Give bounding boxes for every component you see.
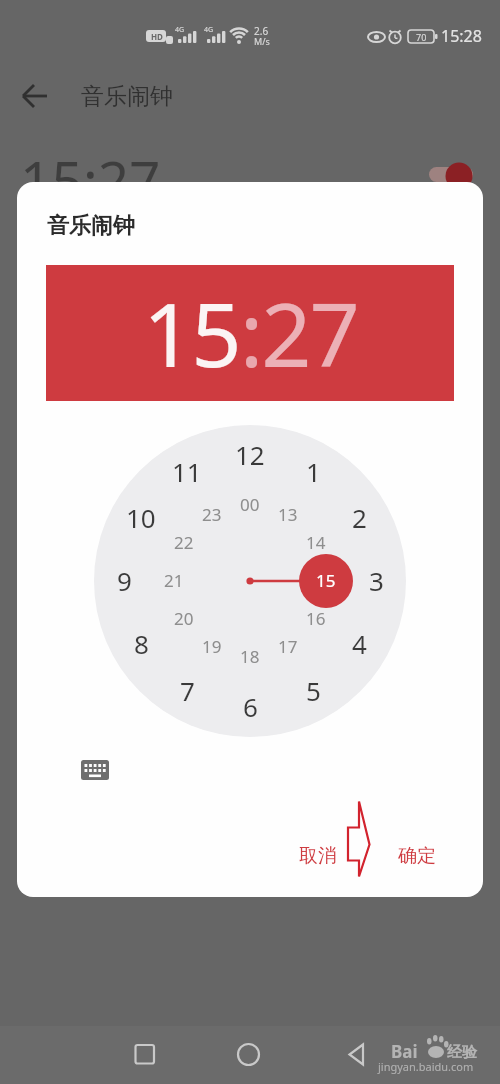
staticText: 3 xyxy=(369,563,384,598)
staticText: 5 xyxy=(306,673,321,708)
staticText: 取消 xyxy=(299,844,337,868)
staticText: 21 xyxy=(164,569,184,592)
staticText: 16 xyxy=(306,607,326,630)
staticText: 2.6 xyxy=(254,24,269,38)
button[interactable]: 19 xyxy=(173,628,251,665)
button[interactable]: 2 xyxy=(326,489,392,546)
button[interactable]: 14 xyxy=(277,524,355,561)
staticText: 确定 xyxy=(398,844,436,868)
staticText: 7 xyxy=(180,673,195,708)
staticText: 6 xyxy=(243,689,258,724)
staticText: 1 xyxy=(306,454,321,489)
staticText: 23 xyxy=(202,503,222,526)
button[interactable]: 12 xyxy=(196,426,303,483)
staticText: 15:27 xyxy=(20,142,161,217)
button[interactable]: 20 xyxy=(145,600,223,637)
staticText: 18 xyxy=(240,645,260,668)
button[interactable]: 3 xyxy=(343,552,409,609)
button[interactable]: 00 xyxy=(211,486,289,523)
staticText: 00 xyxy=(240,493,260,516)
button[interactable]: 8 xyxy=(108,615,174,672)
staticText: 音乐闹钟 xyxy=(47,212,135,240)
button[interactable]: 5 xyxy=(280,662,346,719)
button[interactable]: 音乐闹钟 xyxy=(47,212,135,240)
button[interactable]: 1 xyxy=(280,443,346,500)
button[interactable]: 17 xyxy=(249,628,327,665)
button[interactable]: 21 xyxy=(135,562,213,599)
staticText: Bai xyxy=(391,1040,418,1063)
staticText: 14 xyxy=(306,531,326,554)
staticText: 8 xyxy=(134,626,149,661)
button[interactable]: 23 xyxy=(173,496,251,533)
staticText: 10 xyxy=(126,500,156,535)
staticText: 13 xyxy=(278,503,298,526)
button[interactable]: 10 xyxy=(87,489,194,546)
button[interactable]: 22 xyxy=(145,524,223,561)
staticText: 20 xyxy=(174,607,194,630)
staticText: jingyan.baidu.com xyxy=(378,1059,474,1074)
staticText: 15:27 xyxy=(143,273,358,393)
button[interactable]: 13 xyxy=(249,496,327,533)
staticText: 70 xyxy=(416,31,427,43)
staticText: 15 xyxy=(316,569,336,592)
staticText: 15:28 xyxy=(441,25,482,47)
staticText: 4 xyxy=(352,626,367,661)
staticText: 音乐闹钟 xyxy=(81,82,173,111)
staticText: 19 xyxy=(202,635,222,658)
button[interactable]: 确定 xyxy=(374,835,459,877)
button[interactable]: 7 xyxy=(154,662,220,719)
button[interactable]: 9 xyxy=(91,552,157,609)
button[interactable]: 15 xyxy=(287,562,365,599)
staticText: 2 xyxy=(352,500,367,535)
staticText: 12 xyxy=(235,437,265,472)
staticText: M/s xyxy=(254,35,270,47)
staticText: HD xyxy=(151,31,163,42)
staticText: 4G xyxy=(204,25,214,35)
staticText: 4G xyxy=(175,25,185,35)
button[interactable]: 18 xyxy=(211,638,289,675)
button[interactable]: 11 xyxy=(133,443,240,500)
staticText: 9 xyxy=(117,563,132,598)
button[interactable]: 6 xyxy=(217,678,283,735)
button[interactable]: 16 xyxy=(277,600,355,637)
staticText: 17 xyxy=(278,635,298,658)
button[interactable]: 取消 xyxy=(275,835,360,877)
button[interactable]: 4 xyxy=(326,615,392,672)
staticText: 经验 xyxy=(447,1043,477,1062)
staticText: 11 xyxy=(172,454,202,489)
staticText: 22 xyxy=(174,531,194,554)
